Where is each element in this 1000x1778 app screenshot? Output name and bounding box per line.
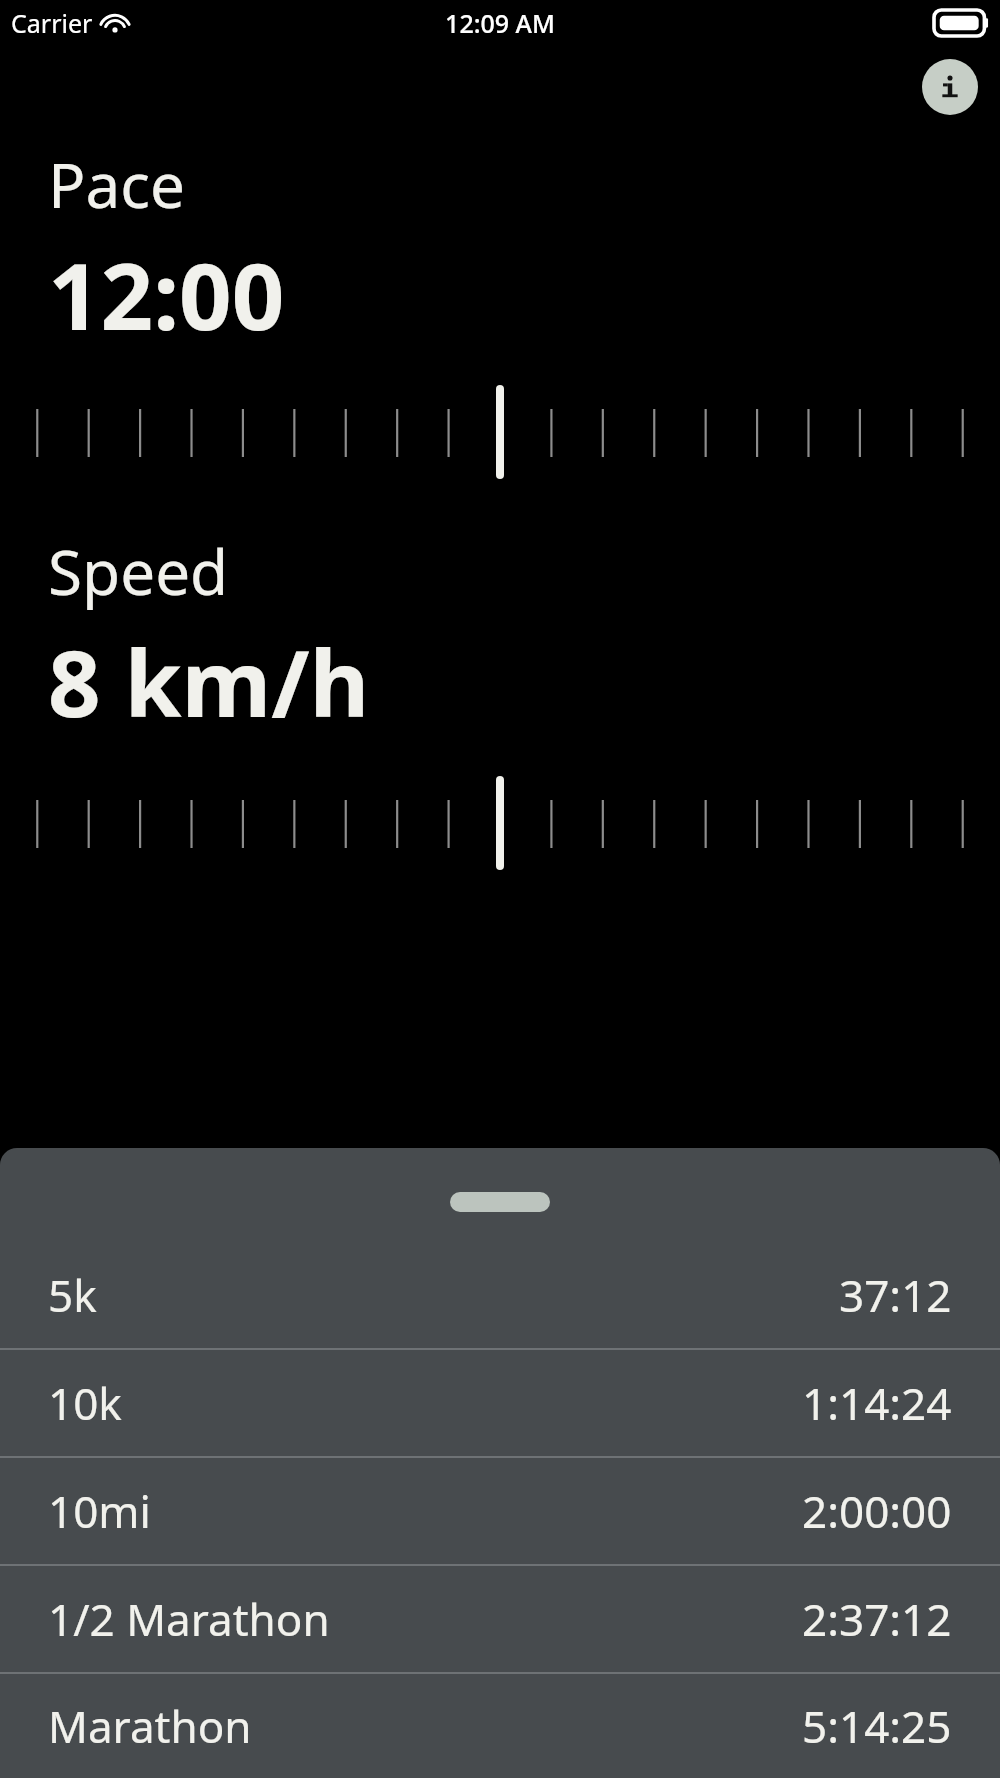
staticText: 2:37:12: [802, 1589, 952, 1649]
staticText: Marathon: [48, 1696, 252, 1756]
button[interactable]: 5k: [0, 1242, 1000, 1348]
button[interactable]: Info: [922, 59, 978, 115]
staticText: 37:12: [839, 1265, 952, 1325]
staticText: 12:00: [48, 232, 285, 357]
staticText: 5k: [48, 1265, 97, 1325]
button[interactable]: 10mi: [0, 1458, 1000, 1564]
staticText: Carrier: [11, 6, 93, 40]
staticText: 1:14:24: [802, 1373, 952, 1433]
staticText: 10mi: [48, 1481, 151, 1541]
button[interactable]: Value slider: [0, 387, 1000, 483]
staticText: Pace: [48, 142, 186, 226]
staticText: 1/2 Marathon: [48, 1589, 330, 1649]
button[interactable]: Drag handle: [0, 1148, 1000, 1242]
staticText: 2:00:00: [802, 1481, 952, 1541]
button[interactable]: 1/2 Marathon: [0, 1566, 1000, 1672]
button[interactable]: Value slider: [0, 778, 1000, 874]
staticText: 8 km/h: [48, 619, 370, 744]
staticText: 10k: [48, 1373, 122, 1433]
staticText: Speed: [48, 529, 229, 613]
staticText: 12:09 AM: [445, 6, 555, 40]
button[interactable]: 10k: [0, 1350, 1000, 1456]
button[interactable]: Marathon: [0, 1674, 1000, 1778]
staticText: 5:14:25: [802, 1696, 952, 1756]
